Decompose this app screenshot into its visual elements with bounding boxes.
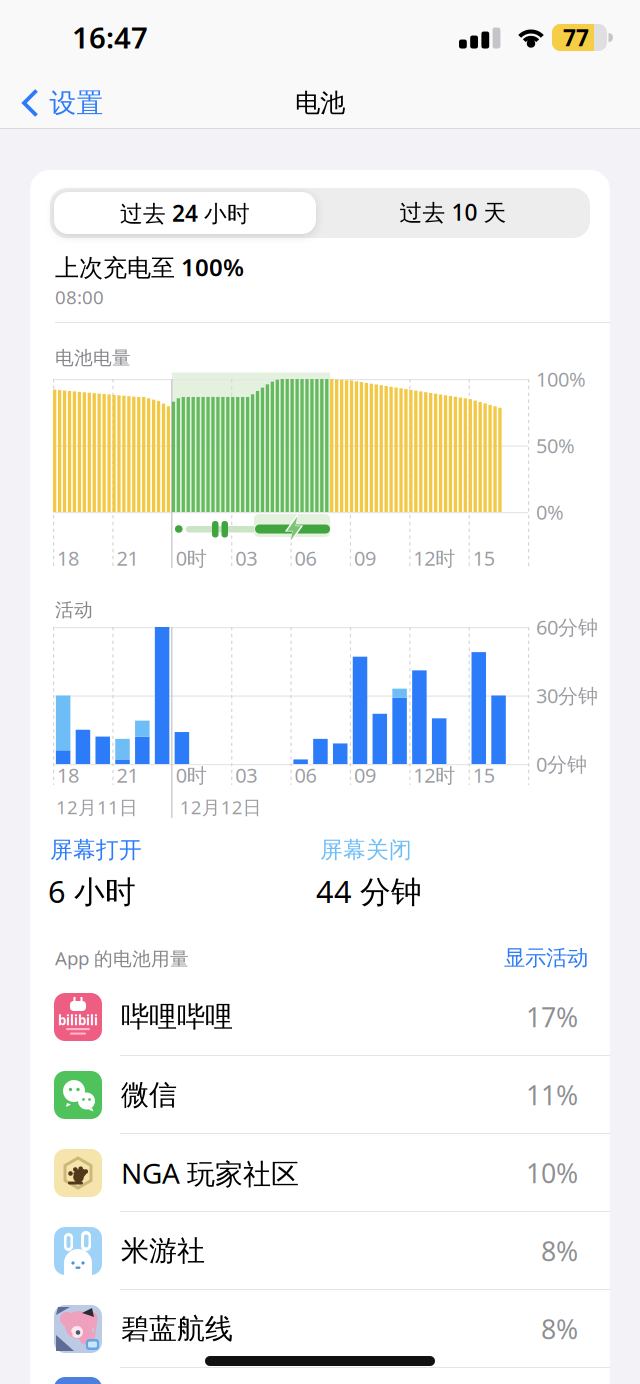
staticText: 12月12日	[180, 795, 262, 819]
staticText: 0时	[176, 545, 207, 571]
staticText: 0分钟	[536, 751, 587, 777]
staticText: 8%	[541, 1233, 578, 1269]
staticText: 18	[57, 762, 79, 788]
staticText: 上次充电至 100%	[55, 251, 244, 283]
staticText: 16:47	[72, 17, 148, 56]
staticText: 09	[354, 545, 376, 571]
staticText: bilibili	[58, 1011, 98, 1029]
staticText: 17%	[526, 999, 578, 1035]
staticText: 06	[294, 545, 316, 571]
staticText: 哔哩哔哩	[121, 1000, 233, 1034]
staticText: 06	[294, 762, 316, 788]
button[interactable]: 碧蓝航线	[30, 1290, 610, 1368]
staticText: 12时	[413, 762, 455, 788]
button[interactable]: 返回设置	[20, 87, 103, 119]
staticText: 6 小时	[48, 871, 136, 911]
button[interactable]: 米游社	[30, 1212, 610, 1290]
staticText: 30分钟	[536, 682, 598, 709]
staticText: 微信	[121, 1078, 177, 1112]
staticText: 12时	[413, 545, 455, 571]
staticText: 21	[116, 545, 138, 571]
staticText: 08:00	[55, 285, 104, 309]
staticText: 碧蓝航线	[121, 1312, 233, 1346]
button[interactable]: 显示活动	[388, 945, 588, 971]
staticText: 显示活动	[504, 945, 588, 971]
staticText: 8%	[541, 1311, 578, 1347]
staticText: 电池电量	[55, 346, 131, 369]
staticText: 设置	[49, 87, 103, 119]
staticText: 0%	[536, 499, 564, 525]
button[interactable]: 过去 24 小时	[54, 192, 316, 234]
staticText: 米游社	[121, 1234, 205, 1268]
staticText: 15	[473, 545, 495, 571]
staticText: 03	[235, 762, 257, 788]
staticText: 过去 24 小时	[120, 198, 250, 228]
staticText: 11%	[526, 1077, 578, 1113]
staticText: 50%	[536, 432, 575, 459]
staticText: 09	[354, 762, 376, 788]
button[interactable]: NGA 玩家社区	[30, 1134, 610, 1212]
staticText: NGA 玩家社区	[121, 1154, 299, 1192]
staticText: 77	[563, 22, 589, 52]
staticText: 活动	[55, 598, 93, 621]
staticText: 12月11日	[56, 795, 138, 819]
staticText: 18	[57, 545, 79, 571]
staticText: 屏幕关闭	[320, 836, 412, 864]
staticText: App 的电池用量	[55, 946, 189, 970]
staticText: 屏幕打开	[50, 836, 142, 864]
staticText: 100%	[536, 366, 586, 392]
staticText: 10%	[526, 1155, 578, 1191]
staticText: 60分钟	[536, 614, 598, 640]
staticText: 44 分钟	[316, 871, 422, 911]
button[interactable]: 微信	[30, 1056, 610, 1134]
staticText: 过去 10 天	[399, 197, 506, 227]
staticText: 15	[473, 762, 495, 788]
staticText: 03	[235, 545, 257, 571]
staticText: 电池	[295, 87, 345, 118]
staticText: 0时	[176, 762, 207, 788]
button[interactable]: bilibili	[30, 978, 610, 1056]
staticText: 21	[116, 762, 138, 788]
button[interactable]: 过去 10 天	[322, 190, 584, 234]
